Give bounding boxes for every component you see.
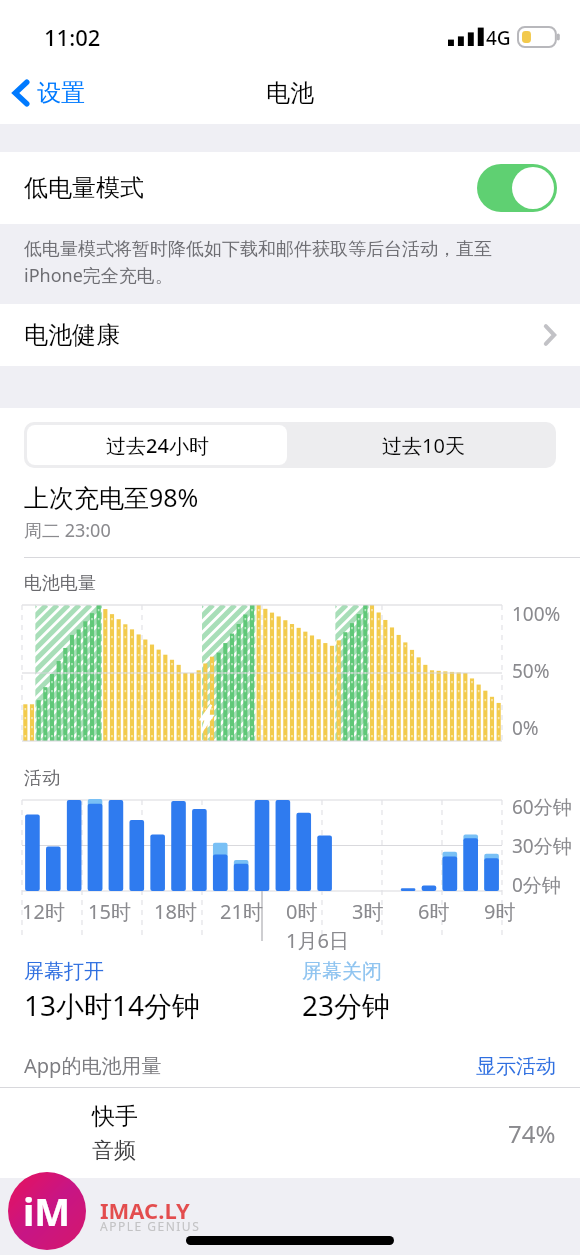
staticText: 电池 xyxy=(266,78,314,108)
staticText: 音频 xyxy=(92,1137,136,1165)
staticText: 0时 xyxy=(286,898,318,925)
staticText: 屏幕打开 xyxy=(24,959,104,984)
staticText: 30分钟 xyxy=(512,833,572,859)
staticText: App的电池用量 xyxy=(24,1052,162,1079)
staticText: 电池健康 xyxy=(24,320,120,350)
staticText: 50% xyxy=(512,658,550,684)
button[interactable]: 低电量模式 xyxy=(0,152,580,224)
staticText: APPLE GENIUS xyxy=(100,1218,201,1234)
staticText: 过去10天 xyxy=(382,432,465,459)
staticText: 1月6日 xyxy=(286,927,349,954)
staticText: 4G xyxy=(486,25,511,51)
button[interactable]: 过去24小时 xyxy=(27,425,287,465)
staticText: 上次充电至98% xyxy=(24,480,199,514)
staticText: 13小时14分钟 xyxy=(24,986,201,1024)
staticText: 设置 xyxy=(37,78,85,108)
staticText: 9时 xyxy=(484,898,516,925)
button[interactable]: 设置 xyxy=(0,72,97,114)
staticText: iM xyxy=(23,1185,71,1237)
staticText: 6时 xyxy=(418,898,450,925)
button[interactable]: 快手 xyxy=(0,1088,580,1178)
staticText: 60分钟 xyxy=(512,794,572,820)
staticText: 23分钟 xyxy=(302,986,391,1024)
staticText: 74% xyxy=(508,1117,556,1150)
staticText: 100% xyxy=(512,601,561,627)
button[interactable]: Low Power Mode toggle xyxy=(477,164,557,212)
staticText: 0分钟 xyxy=(512,872,561,898)
staticText: 低电量模式 xyxy=(24,173,144,203)
button[interactable]: 显示活动 xyxy=(476,1054,556,1079)
staticText: 活动 xyxy=(24,767,60,790)
staticText: 0% xyxy=(512,715,539,741)
staticText: 18时 xyxy=(154,898,197,925)
button[interactable]: 过去10天 xyxy=(290,422,556,468)
staticText: 15时 xyxy=(88,898,131,925)
staticText: 电池电量 xyxy=(24,572,96,595)
staticText: 快手 xyxy=(92,1102,138,1131)
staticText: 显示活动 xyxy=(476,1054,556,1079)
staticText: 低电量模式将暂时降低如下载和邮件获取等后台活动，直至 iPhone完全充电。 xyxy=(24,238,492,288)
staticText: 过去24小时 xyxy=(106,432,209,459)
staticText: IMAC.LY xyxy=(100,1195,190,1225)
staticText: 3时 xyxy=(352,898,384,925)
staticText: 周二 23:00 xyxy=(24,518,111,543)
staticText: 12时 xyxy=(22,898,65,925)
staticText: 21时 xyxy=(220,898,263,925)
staticText: 屏幕关闭 xyxy=(302,959,382,984)
button[interactable]: 电池健康 xyxy=(0,304,580,366)
staticText: 11:02 xyxy=(44,22,101,52)
